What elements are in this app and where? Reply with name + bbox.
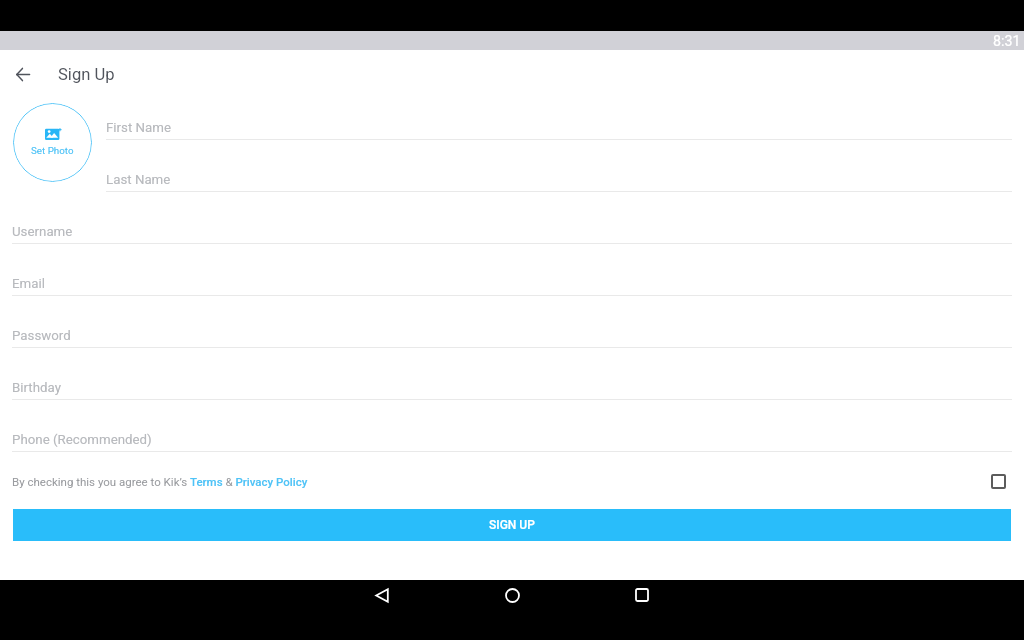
staticText: First Name	[106, 120, 172, 136]
staticText: Set Photo	[31, 145, 74, 156]
staticText: Sign Up	[58, 65, 115, 84]
button[interactable]	[12, 265, 1012, 296]
button[interactable]	[12, 369, 1012, 400]
staticText: SIGN UP	[489, 518, 535, 532]
button[interactable]: Back	[358, 577, 406, 613]
button[interactable]: Set Photo	[13, 103, 92, 182]
staticText: Email	[12, 276, 45, 292]
staticText: Last Name	[106, 172, 171, 188]
staticText: Username	[12, 224, 73, 240]
button[interactable]: Back	[6, 58, 39, 91]
button[interactable]	[12, 317, 1012, 348]
staticText: Phone (Recommended)	[12, 432, 152, 448]
button[interactable]: Recent apps	[618, 577, 666, 613]
button[interactable]: SIGN UP	[13, 509, 1011, 541]
button[interactable]	[106, 109, 1012, 140]
staticText: By checking this you agree to Kik’s Term…	[12, 475, 308, 488]
staticText: Birthday	[12, 380, 61, 396]
staticText: Password	[12, 328, 71, 344]
button[interactable]	[12, 421, 1012, 452]
button[interactable]: Agree to terms	[986, 469, 1011, 494]
button[interactable]: Home	[488, 577, 536, 613]
button[interactable]	[106, 161, 1012, 192]
staticText: 8:31	[993, 33, 1021, 50]
button[interactable]	[12, 213, 1012, 244]
